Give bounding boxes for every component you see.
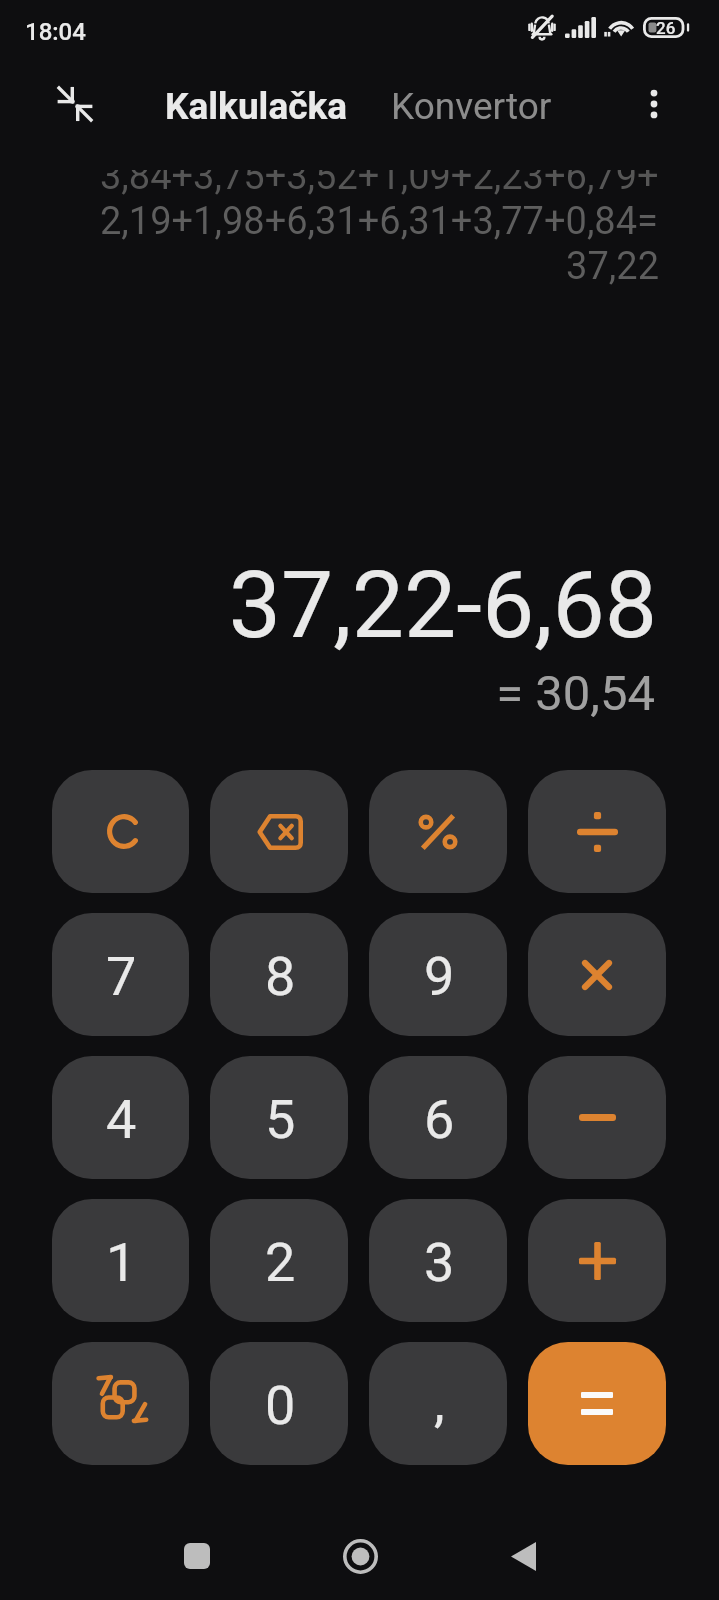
button[interactable]: Backspace <box>210 770 348 893</box>
button[interactable]: 0 <box>210 1342 348 1465</box>
button[interactable]: 8 <box>210 913 348 1036</box>
button[interactable]: , <box>369 1342 507 1465</box>
staticText: Konvertor <box>391 85 552 128</box>
button[interactable]: Multiply <box>528 913 666 1036</box>
staticText: 1 <box>106 1231 137 1294</box>
button[interactable]: 1 <box>52 1199 189 1322</box>
button[interactable]: Back <box>481 1514 565 1598</box>
button[interactable]: Collapse <box>50 79 100 129</box>
button[interactable]: Recents <box>155 1514 239 1598</box>
staticText: 9 <box>424 945 455 1008</box>
button[interactable]: Konvertor <box>379 73 564 140</box>
staticText: 0 <box>265 1374 296 1437</box>
staticText: 3 <box>424 1231 455 1294</box>
staticText: 2,19+1,98+6,31+6,31+3,77+0,84= <box>100 199 659 244</box>
staticText: 3,84+3,75+3,52+1,09+2,23+6,79+ <box>100 170 659 199</box>
button[interactable]: 4 <box>52 1056 189 1179</box>
staticText: 37,22 <box>100 244 659 289</box>
button[interactable]: Home <box>318 1514 402 1598</box>
staticText: 8 <box>265 945 296 1008</box>
button[interactable]: 2 <box>210 1199 348 1322</box>
staticText: 5 <box>265 1088 296 1151</box>
staticText: Kalkulačka <box>165 85 348 128</box>
staticText: 18:04 <box>25 18 86 46</box>
staticText: 2 <box>265 1231 296 1294</box>
button[interactable]: 9 <box>369 913 507 1036</box>
button[interactable]: Minus <box>528 1056 666 1179</box>
staticText: = 30,54 <box>0 665 655 722</box>
staticText: 7 <box>106 945 137 1008</box>
button[interactable]: 7 <box>52 913 189 1036</box>
button[interactable]: Kalkulačka <box>153 73 360 140</box>
staticText: 4 <box>106 1088 137 1151</box>
button[interactable]: 3 <box>369 1199 507 1322</box>
button[interactable]: Plus <box>528 1199 666 1322</box>
button[interactable]: Percent <box>369 770 507 893</box>
button[interactable]: Scientific <box>52 1342 189 1465</box>
button[interactable]: Divide <box>528 770 666 893</box>
button[interactable]: 6 <box>369 1056 507 1179</box>
staticText: , <box>434 1371 445 1434</box>
button[interactable]: More options <box>629 79 679 129</box>
button[interactable]: 5 <box>210 1056 348 1179</box>
staticText: 6 <box>424 1088 455 1151</box>
staticText: 37,22-6,68 <box>0 551 657 660</box>
staticText: 26 <box>656 18 676 38</box>
button[interactable]: Equals <box>528 1342 666 1465</box>
button[interactable]: Clear <box>52 770 189 893</box>
